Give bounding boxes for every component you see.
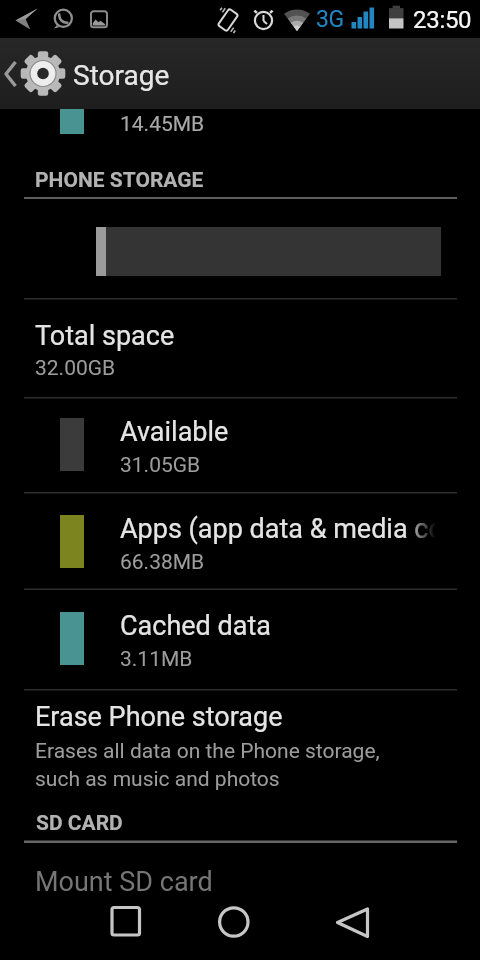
- staticText: 3.11MB: [120, 647, 193, 672]
- staticText: Storage: [73, 59, 170, 92]
- staticText: 31.05GB: [120, 453, 201, 478]
- button[interactable]: Storage: [0, 38, 480, 109]
- staticText: PHONE STORAGE: [35, 168, 204, 193]
- button[interactable]: [0, 689, 480, 811]
- staticText: 3G: [316, 6, 344, 33]
- staticText: such as music and photos: [35, 767, 280, 792]
- staticText: 66.38MB: [120, 550, 205, 575]
- button[interactable]: [0, 298, 480, 397]
- staticText: 14.45MB: [120, 112, 205, 137]
- staticText: Apps (app data & media co: [120, 513, 444, 545]
- staticText: Mount SD card: [35, 866, 213, 895]
- staticText: Erases all data on the Phone storage,: [35, 739, 380, 764]
- staticText: Cached data: [120, 610, 271, 642]
- staticText: 23:50: [413, 6, 472, 34]
- button[interactable]: [0, 589, 480, 689]
- staticText: Total space: [35, 320, 175, 352]
- staticText: Erase Phone storage: [35, 701, 283, 733]
- button[interactable]: [0, 397, 480, 492]
- staticText: SD CARD: [36, 811, 123, 836]
- staticText: Available: [120, 416, 229, 448]
- button[interactable]: [322, 898, 382, 960]
- button[interactable]: [0, 109, 480, 135]
- button[interactable]: [0, 845, 480, 895]
- button[interactable]: [0, 492, 480, 589]
- staticText: 32.00GB: [35, 356, 116, 381]
- button[interactable]: [96, 898, 156, 960]
- button[interactable]: [204, 898, 264, 960]
